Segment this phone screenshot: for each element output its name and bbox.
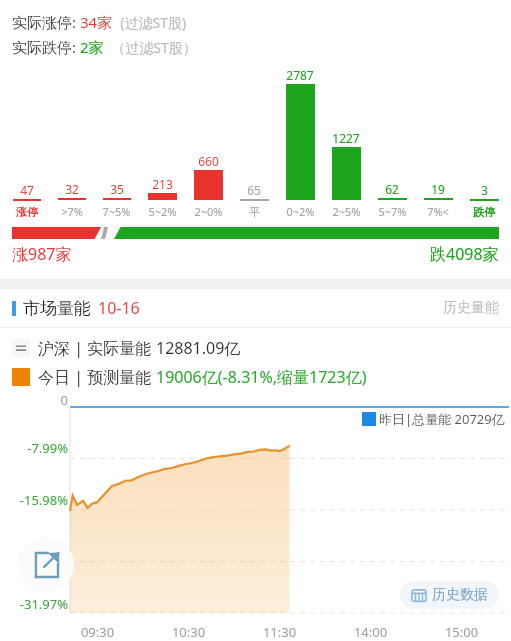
staticText: 2~5%	[332, 204, 361, 219]
staticText: 47	[20, 182, 34, 198]
staticText: -31.97%	[2, 595, 68, 613]
staticText: 涨停	[16, 205, 38, 219]
staticText: >7%	[61, 204, 83, 219]
staticText: 5~7%	[378, 204, 407, 219]
staticText: 5~2%	[148, 204, 177, 219]
staticText: -7.99%	[2, 439, 68, 457]
staticText: 09:30	[52, 623, 143, 641]
staticText: 历史量能	[443, 299, 499, 317]
staticText: 0~2%	[286, 204, 315, 219]
staticText: 市场量能	[23, 298, 91, 319]
button[interactable]: 市场量能	[0, 289, 511, 327]
staticText: 10-16	[98, 297, 140, 319]
staticText: 实际跌停:	[12, 37, 80, 57]
staticText: 今日 | 预测量能	[38, 366, 156, 388]
staticText: 昨日|总量能 20729亿	[379, 410, 505, 428]
staticText: 32	[65, 181, 79, 197]
staticText: 1227	[332, 130, 360, 146]
staticText: -15.98%	[2, 491, 68, 509]
staticText: 660	[198, 153, 219, 169]
staticText: 7%<	[427, 204, 449, 219]
staticText: (过滤ST股)	[113, 13, 187, 32]
staticText: 实际涨停:	[12, 12, 80, 32]
staticText: 10:30	[143, 623, 234, 641]
staticText: 历史数据	[432, 586, 488, 604]
staticText: 12881.09亿	[156, 337, 241, 359]
staticText: 沪深 | 实际量能	[38, 337, 156, 359]
staticText: 3	[481, 182, 488, 198]
staticText: 2787	[286, 67, 314, 83]
button[interactable]: 历史数据	[400, 581, 499, 609]
staticText: 213	[152, 176, 173, 192]
staticText: 34家	[80, 12, 113, 32]
staticText: 涨987家	[12, 243, 72, 265]
staticText: 62	[385, 181, 399, 197]
staticText: 7~5%	[102, 204, 131, 219]
staticText: 平	[249, 205, 260, 219]
staticText: 14:00	[325, 623, 416, 641]
staticText: （过滤ST股）	[104, 38, 197, 57]
staticText: 11:30	[234, 623, 325, 641]
staticText: 2~0%	[194, 204, 223, 219]
staticText: 跌停	[473, 205, 495, 219]
staticText: 0	[2, 391, 68, 409]
staticText: 19006亿(-8.31%,缩量1723亿)	[156, 366, 367, 388]
staticText: 跌4098家	[430, 243, 499, 265]
staticText: 15:00	[416, 623, 507, 641]
staticText: 65	[247, 182, 261, 198]
staticText: 35	[110, 181, 124, 197]
staticText: 19	[431, 181, 445, 197]
staticText: 2家	[80, 37, 104, 57]
staticText: -23.98%	[2, 543, 68, 561]
button[interactable]: Share	[18, 537, 74, 593]
